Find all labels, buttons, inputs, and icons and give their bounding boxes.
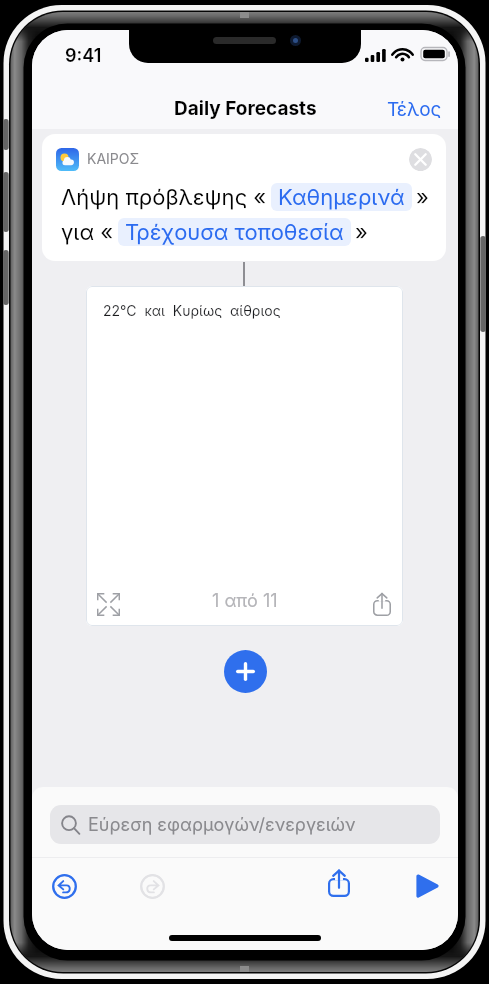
staticText: Τρέχουσα τοποθεσία [125, 219, 344, 246]
button[interactable]: Remove action [409, 148, 432, 171]
button[interactable]: Τρέχουσα τοποθεσία [118, 218, 351, 246]
button[interactable]: ΚΑΙΡΟΣ [42, 134, 446, 261]
button[interactable]: Redo [136, 870, 168, 902]
staticText: Εύρεση εφαρμογών/ενεργειών [88, 814, 356, 836]
staticText: 1 από 11 [212, 590, 278, 612]
button[interactable]: Run [411, 870, 443, 902]
staticText: Λήψη πρόβλεψης « [61, 184, 267, 211]
button[interactable]: Τέλος [371, 92, 458, 124]
staticText: Daily Forecasts [174, 97, 317, 120]
button[interactable]: Εύρεση εφαρμογών/ενεργειών [50, 805, 440, 844]
button[interactable]: Undo [48, 870, 80, 902]
button[interactable]: Add action [224, 650, 267, 693]
staticText: 9:41 [65, 45, 102, 67]
staticText: ΚΑΙΡΟΣ [87, 150, 140, 167]
staticText: » [355, 219, 368, 246]
staticText: 22°C και Κυρίως αίθριος [103, 302, 281, 319]
staticText: » [416, 184, 429, 211]
button[interactable]: Καθημερινά [271, 183, 412, 211]
staticText: για « [61, 219, 114, 246]
button[interactable]: 22°C και Κυρίως αίθριος [86, 286, 403, 626]
staticText: Τέλος [387, 98, 442, 118]
button[interactable]: Expand [94, 590, 122, 618]
button[interactable]: Share result [368, 590, 396, 618]
button[interactable]: Share [323, 867, 355, 899]
staticText: Καθημερινά [278, 184, 405, 211]
